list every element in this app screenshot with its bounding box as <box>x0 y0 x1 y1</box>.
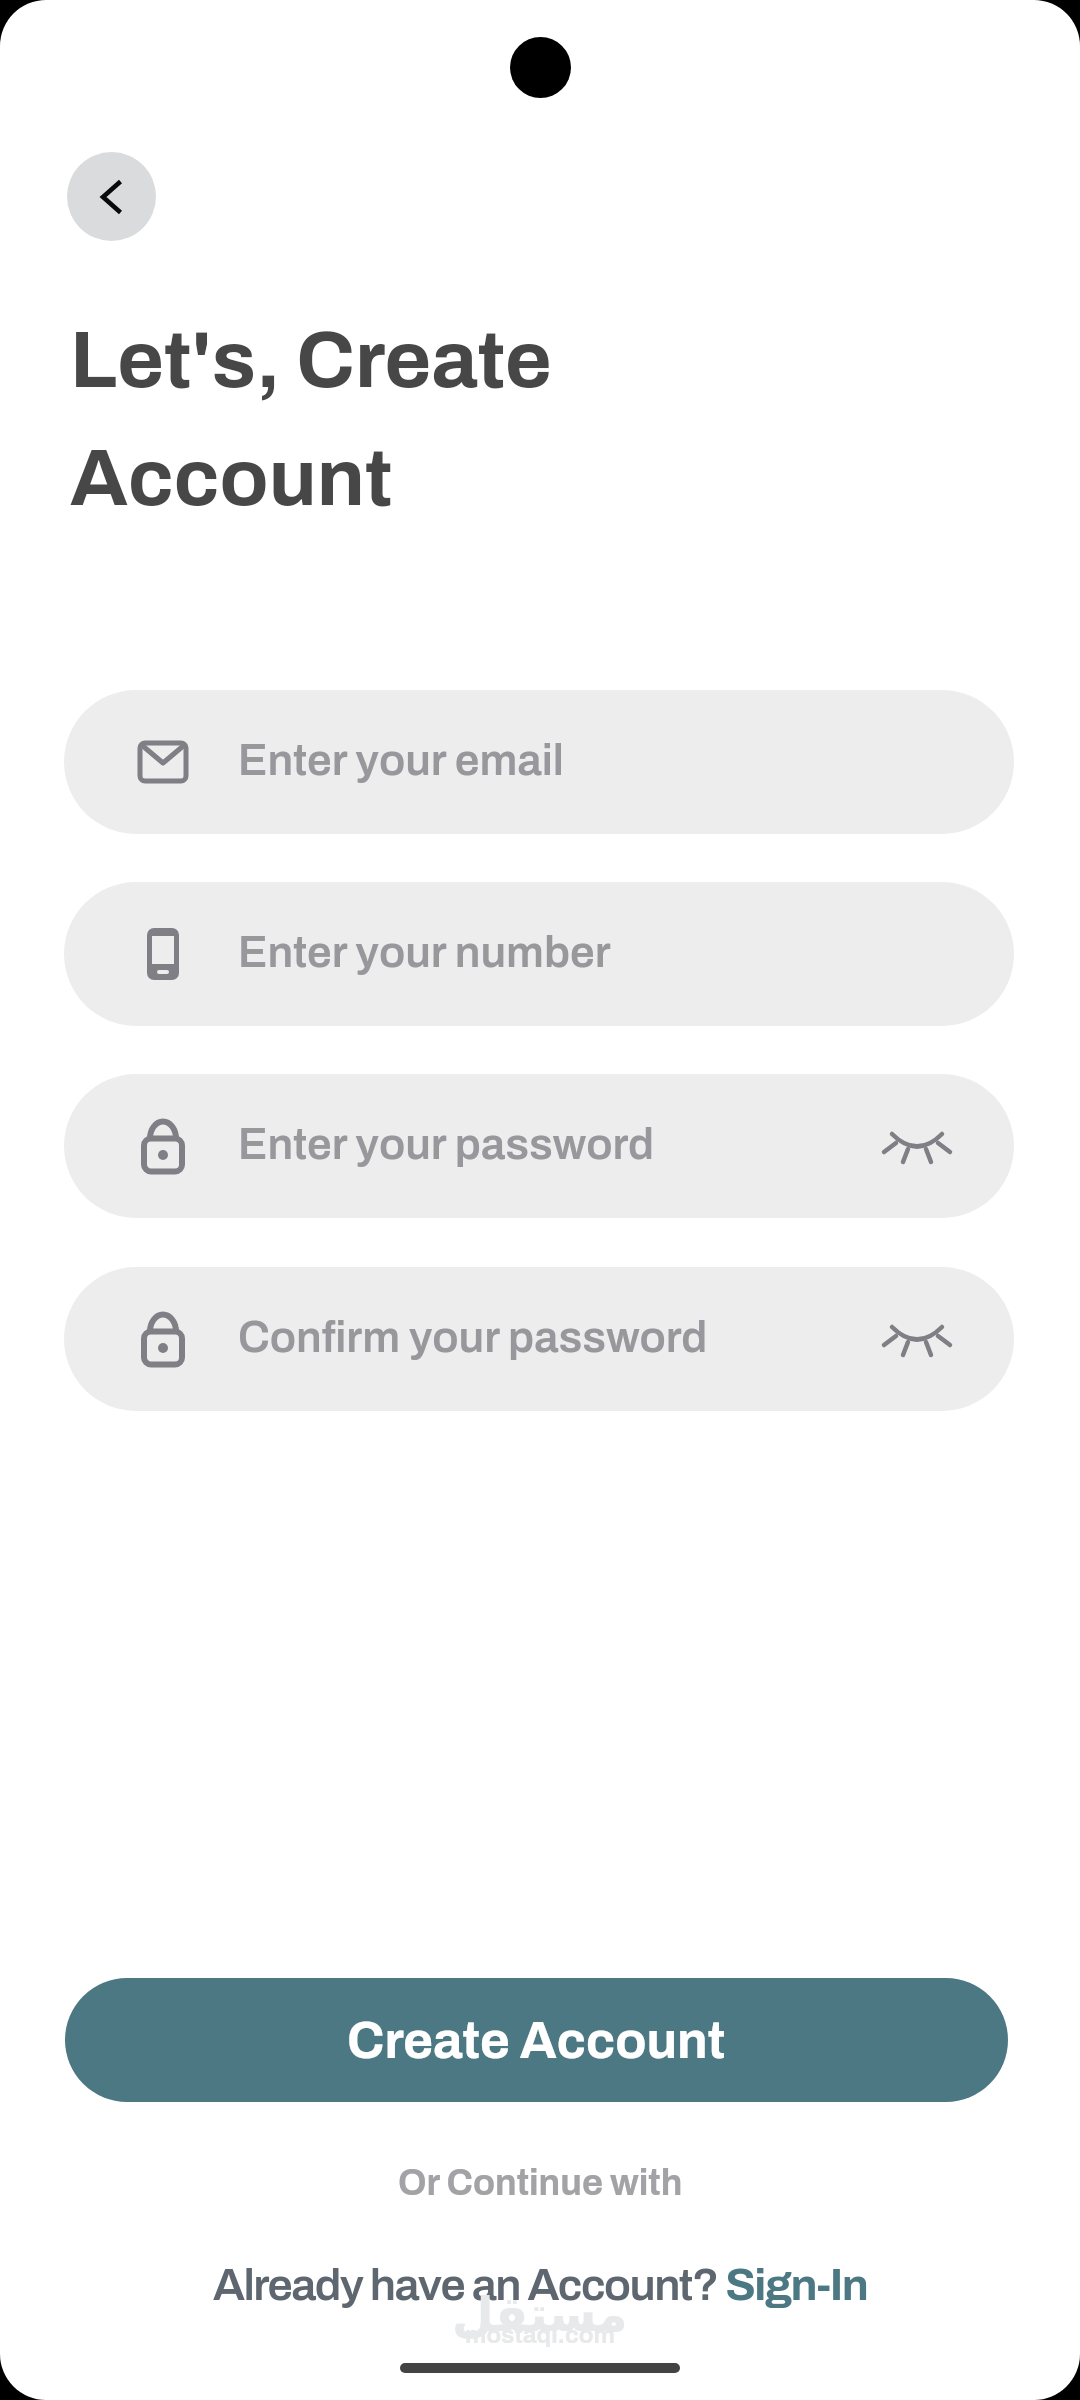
button[interactable]: Enter your number <box>64 882 1014 1026</box>
button[interactable]: Enter your password <box>64 1074 1014 1218</box>
button[interactable]: Already have an Account? Sign-In <box>0 2260 1080 2309</box>
button[interactable]: Enter your email <box>64 690 1014 834</box>
staticText: Enter your email <box>238 736 564 784</box>
staticText: Create Account <box>347 2013 726 2068</box>
staticText: Enter your number <box>238 928 611 976</box>
staticText: مستقل <box>452 2286 628 2342</box>
staticText: Already have an Account? Sign-In <box>213 2260 868 2309</box>
staticText: Or Continue with <box>398 2163 683 2202</box>
staticText: mostaql.com <box>465 2322 615 2348</box>
staticText: Let's, Create Account <box>70 317 552 522</box>
staticText: Confirm your password <box>238 1313 708 1361</box>
button[interactable]: Confirm your password <box>64 1267 1014 1411</box>
button[interactable] <box>67 152 156 241</box>
button[interactable]: Create Account <box>65 1978 1008 2102</box>
staticText: Enter your password <box>238 1120 655 1168</box>
